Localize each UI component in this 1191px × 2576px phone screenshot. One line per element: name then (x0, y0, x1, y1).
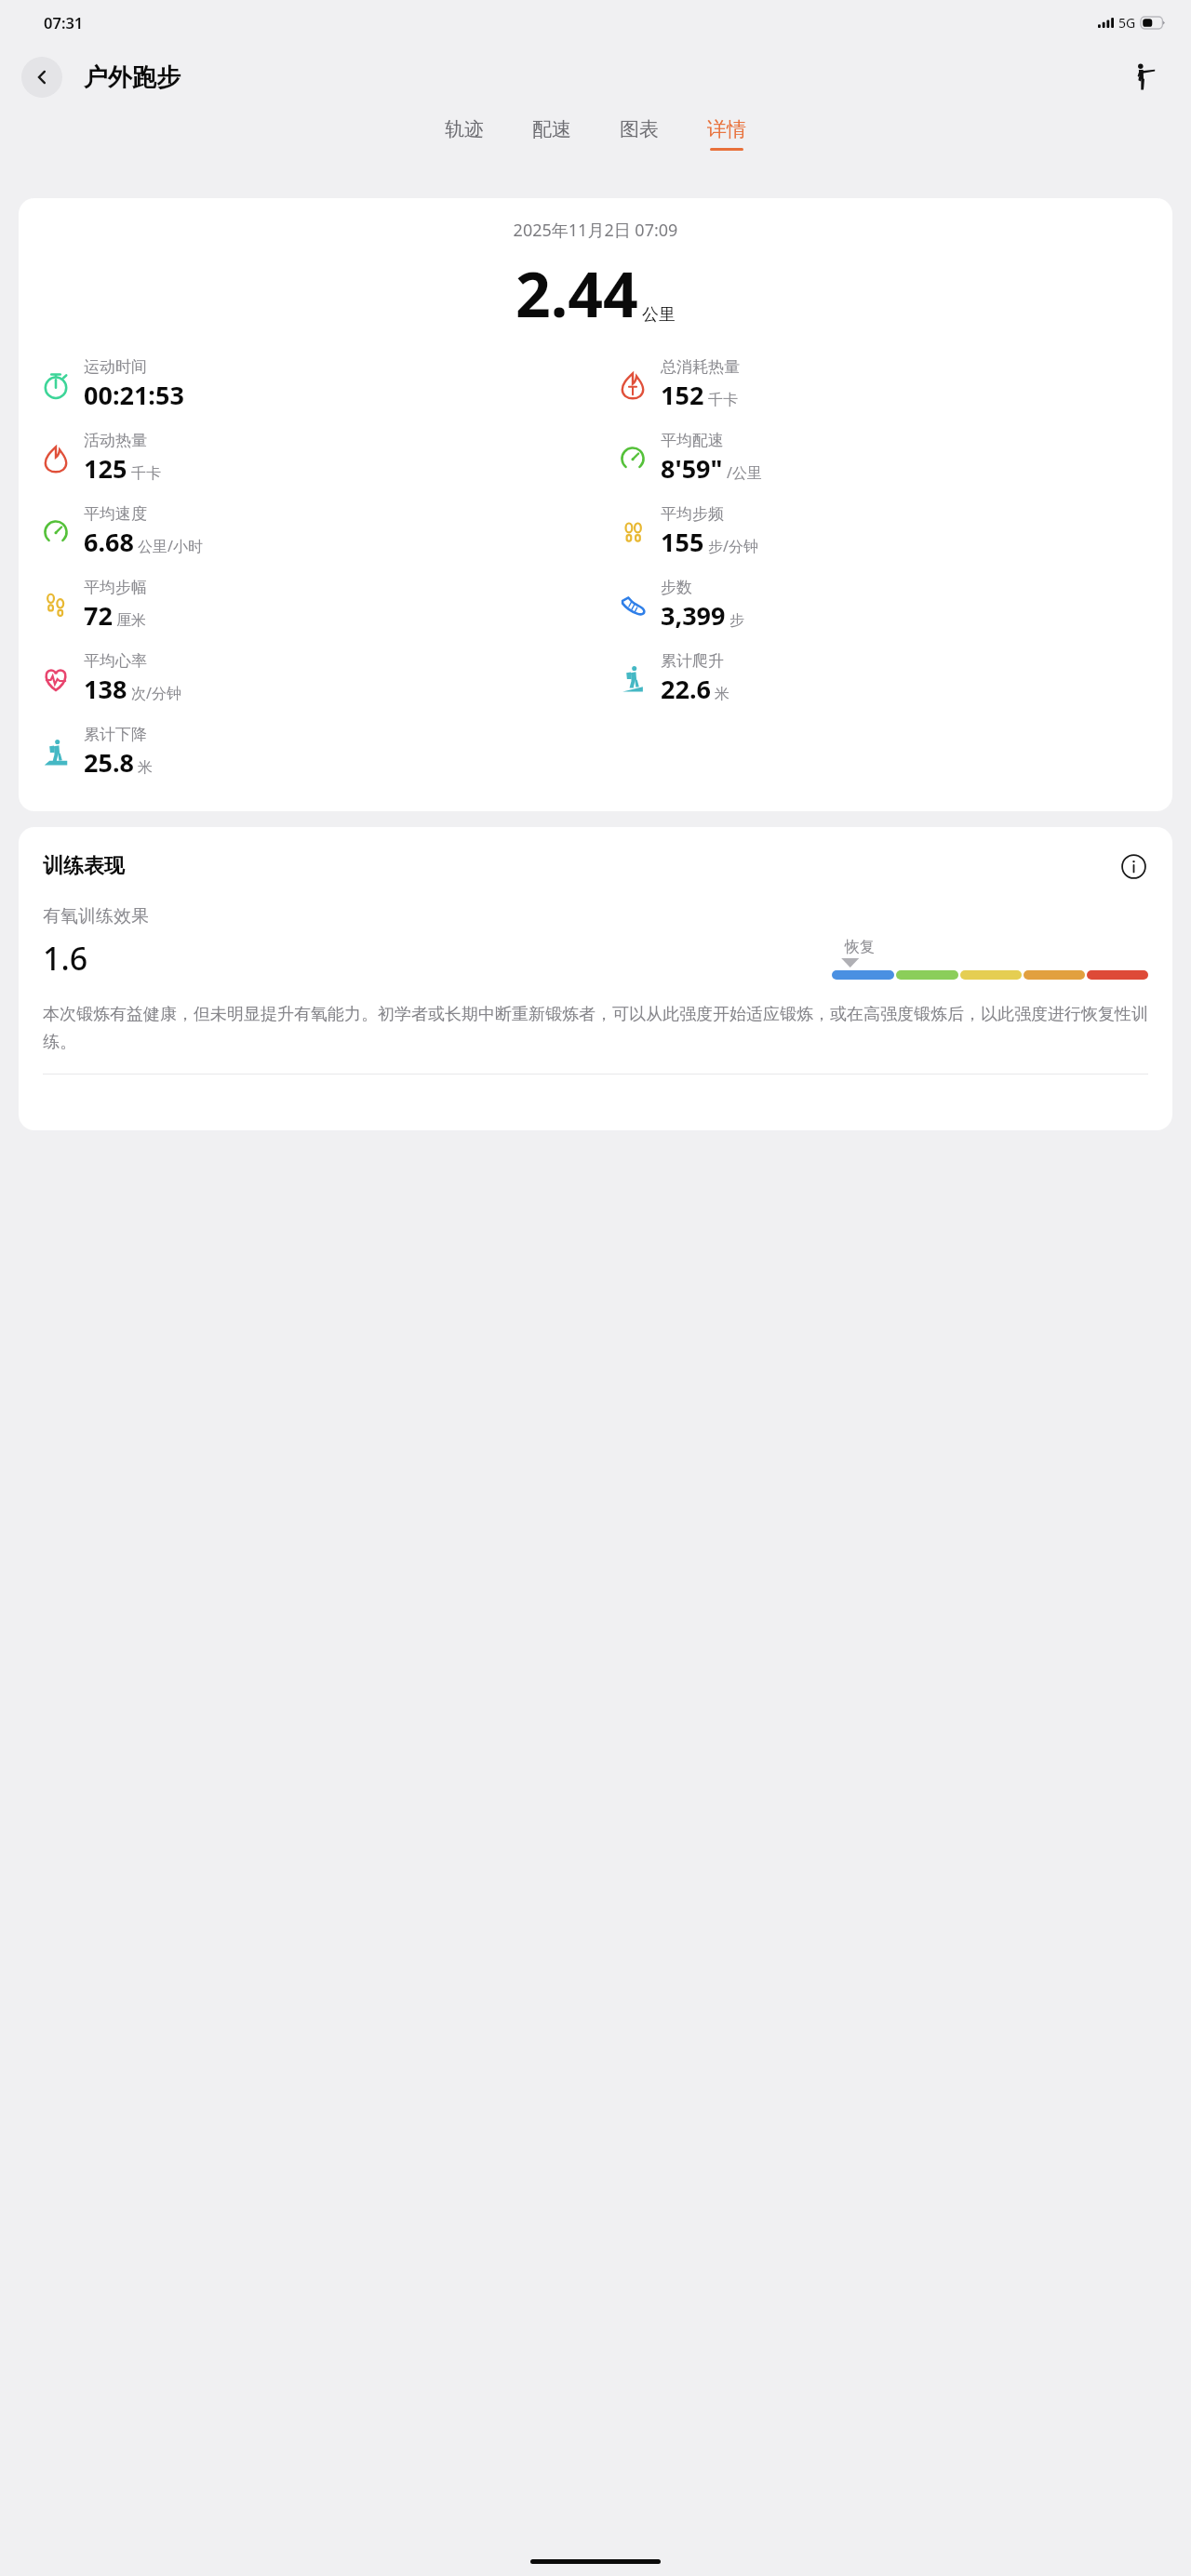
button[interactable]: 说明 (1117, 849, 1150, 883)
staticText: 步 (729, 611, 744, 630)
staticText: 平均步幅 (84, 578, 147, 597)
staticText: 125 (84, 451, 127, 486)
button[interactable]: 步数 (595, 578, 1172, 633)
staticText: 2.44 (515, 251, 638, 335)
staticText: 155 (661, 525, 704, 559)
staticText: 平均步频 (661, 504, 724, 524)
staticText: 有氧训练效果 (43, 905, 149, 928)
button[interactable]: 平均步频 (595, 504, 1172, 559)
button[interactable]: 累计爬升 (595, 651, 1172, 706)
staticText: 5G (1118, 14, 1136, 32)
staticText: 公里 (642, 304, 676, 326)
staticText: 07:31 (44, 12, 84, 33)
staticText: 8'59" (661, 451, 723, 486)
staticText: 累计爬升 (661, 651, 724, 671)
staticText: 平均速度 (84, 504, 147, 524)
button[interactable]: 运动时间 (19, 357, 595, 412)
button[interactable]: 跑步类型 (1122, 56, 1165, 99)
staticText: 152 (661, 378, 704, 412)
button[interactable]: 平均速度 (19, 504, 595, 559)
staticText: 本次锻炼有益健康，但未明显提升有氧能力。初学者或长期中断重新锻炼者，可以从此强度… (43, 1004, 1150, 1053)
staticText: 千卡 (131, 464, 161, 483)
staticText: 累计下降 (84, 725, 147, 744)
staticText: 22.6 (661, 672, 711, 706)
button[interactable]: 配速 (525, 113, 579, 154)
staticText: 6.68 (84, 525, 134, 559)
button[interactable]: 图表 (612, 113, 666, 154)
staticText: 恢复 (845, 938, 875, 956)
staticText: 步数 (661, 578, 692, 597)
button[interactable]: 平均配速 (595, 431, 1172, 486)
staticText: 2025年11月2日 07:09 (19, 219, 1172, 242)
staticText: 轨迹 (445, 117, 484, 141)
staticText: 平均配速 (661, 431, 724, 450)
staticText: 千卡 (708, 391, 738, 409)
button[interactable]: 返回 (21, 57, 62, 98)
staticText: 图表 (620, 117, 659, 141)
staticText: 25.8 (84, 745, 134, 780)
staticText: 配速 (532, 117, 571, 141)
staticText: 米 (715, 685, 729, 703)
button[interactable]: 平均心率 (19, 651, 595, 706)
staticText: 平均心率 (84, 651, 147, 671)
staticText: 72 (84, 598, 113, 633)
button[interactable]: 轨迹 (437, 113, 491, 154)
button[interactable]: 累计下降 (19, 725, 595, 780)
staticText: 总消耗热量 (661, 357, 740, 377)
staticText: 138 (84, 672, 127, 706)
staticText: 1.6 (43, 937, 88, 980)
button[interactable]: 活动热量 (19, 431, 595, 486)
staticText: /公里 (727, 462, 762, 483)
staticText: 步/分钟 (708, 536, 758, 556)
staticText: 详情 (707, 117, 746, 141)
staticText: 活动热量 (84, 431, 147, 450)
button[interactable]: 总消耗热量 (595, 357, 1172, 412)
staticText: 厘米 (116, 611, 146, 630)
button[interactable]: 详情 (700, 113, 754, 154)
staticText: 运动时间 (84, 357, 147, 377)
staticText: 00:21:53 (84, 378, 184, 412)
staticText: 米 (138, 758, 153, 777)
staticText: 训练表现 (43, 853, 125, 879)
staticText: 户外跑步 (84, 62, 181, 93)
staticText: 3,399 (661, 598, 726, 633)
staticText: 公里/小时 (138, 536, 203, 556)
button[interactable]: 平均步幅 (19, 578, 595, 633)
staticText: 次/分钟 (131, 683, 181, 703)
